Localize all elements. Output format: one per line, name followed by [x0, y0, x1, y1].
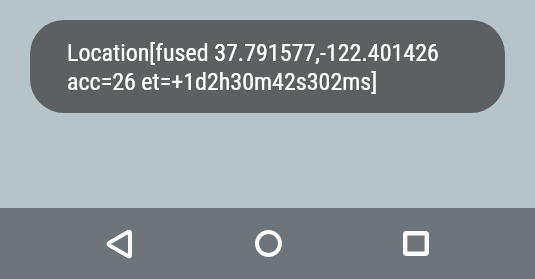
staticText: acc=26 et=+1d2h30m42s302ms] [67, 68, 378, 96]
button[interactable]: Home [233, 208, 303, 279]
staticText: Location[fused 37.791577,-122.401426 [67, 39, 439, 67]
button[interactable]: Location[fused 37.791577,-122.401426 [30, 20, 505, 113]
button[interactable]: Recent apps [381, 208, 451, 279]
button[interactable]: Back [83, 208, 153, 279]
